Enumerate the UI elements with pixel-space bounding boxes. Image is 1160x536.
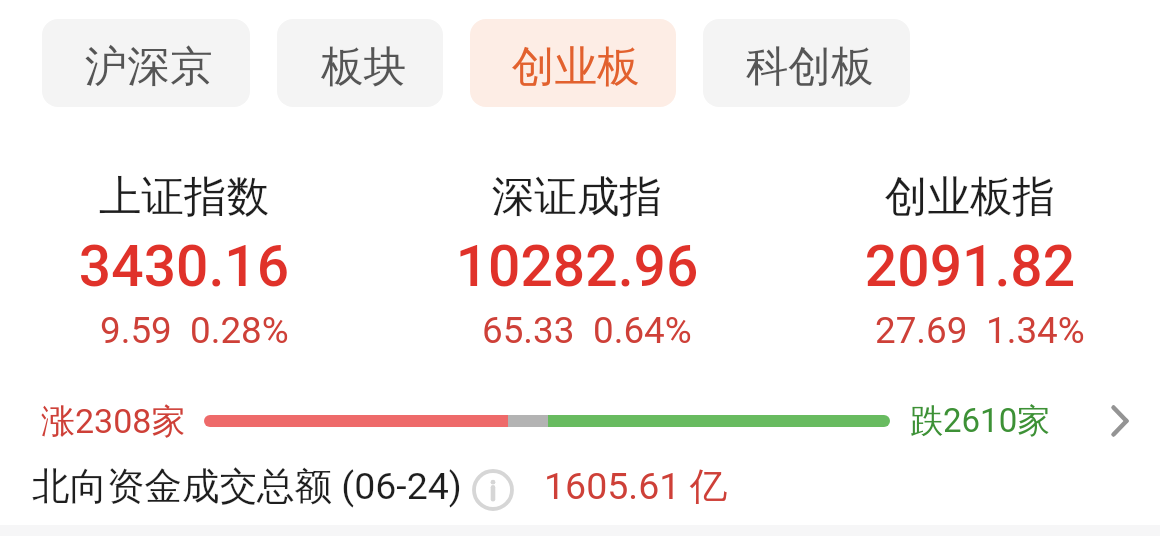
staticText: 9.59 <box>100 309 172 352</box>
staticText: 创业板 <box>512 40 640 94</box>
button[interactable]: 创业板指 <box>720 170 1160 370</box>
button[interactable]: Info <box>472 469 514 511</box>
staticText: 北向资金成交总额 (06-24) <box>32 463 462 510</box>
staticText: 3430.16 <box>0 233 434 300</box>
button[interactable]: 板块 <box>277 19 443 107</box>
button[interactable]: More details <box>1085 386 1155 456</box>
staticText: 27.69 <box>875 309 968 352</box>
button[interactable]: 沪深京 <box>42 19 250 107</box>
staticText: 跌2610家 <box>910 400 1051 442</box>
staticText: 深证成指 <box>327 170 827 224</box>
staticText: 涨2308家 <box>41 400 186 443</box>
staticText: 10282.96 <box>327 233 827 300</box>
staticText: 科创板 <box>746 40 874 94</box>
staticText: 沪深京 <box>85 40 213 94</box>
staticText: 2091.82 <box>720 233 1160 300</box>
button[interactable]: 涨2308家 <box>0 386 1160 456</box>
staticText: 1605.61 亿 <box>544 463 728 510</box>
staticText: 0.28% <box>190 309 289 352</box>
button[interactable]: 北向资金成交总额 (06-24) <box>0 455 1160 517</box>
staticText: 1.34% <box>986 309 1085 352</box>
button[interactable]: 深证成指 <box>327 170 827 370</box>
button[interactable]: 创业板 <box>470 19 676 107</box>
staticText: 创业板指 <box>720 170 1160 224</box>
button[interactable]: 科创板 <box>703 19 910 107</box>
staticText: 65.33 <box>482 309 575 352</box>
staticText: 板块 <box>321 40 406 94</box>
button[interactable]: 上证指数 <box>0 170 434 370</box>
staticText: 0.64% <box>593 309 692 352</box>
staticText: 上证指数 <box>0 170 434 224</box>
